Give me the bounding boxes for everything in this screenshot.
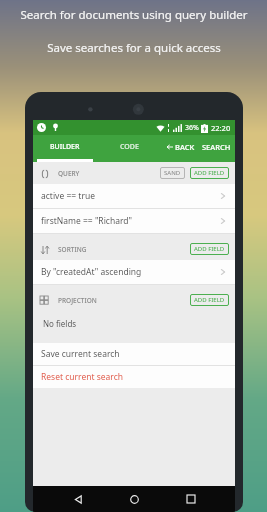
button[interactable]: CODE: [97, 135, 161, 159]
button[interactable]: ADD FIELD: [190, 167, 229, 179]
button[interactable]: By "createdAt" ascending: [33, 260, 235, 284]
button[interactable]: Back: [66, 487, 90, 511]
button[interactable]: Home: [122, 487, 146, 511]
button[interactable]: Recents: [179, 487, 203, 511]
button[interactable]: active == true: [33, 184, 235, 208]
staticText: BACK: [175, 142, 195, 152]
staticText: Save current search: [41, 348, 120, 360]
staticText: SORTING: [58, 245, 87, 254]
staticText: ADD FIELD: [194, 245, 225, 253]
other: Sorting: [40, 245, 50, 255]
staticText: By "createdAt" ascending: [41, 266, 142, 278]
staticText: SEARCH: [202, 142, 231, 152]
staticText: firstName == "Richard": [41, 215, 132, 227]
staticText: BUILDER: [50, 142, 80, 152]
staticText: No fields: [43, 318, 77, 329]
staticText: Reset current search: [41, 371, 124, 383]
button[interactable]: Save current search: [33, 343, 235, 365]
staticText: 36%: [185, 123, 199, 133]
staticText: CODE: [120, 142, 139, 152]
button[interactable]: SEARCH: [202, 142, 231, 152]
staticText: Save searches for a quick access: [47, 40, 221, 56]
other: Query: [40, 169, 50, 179]
button[interactable]: Reset current search: [33, 366, 235, 388]
staticText: ADD FIELD: [194, 296, 225, 304]
staticText: active == true: [41, 190, 95, 202]
staticText: 22:20: [211, 123, 231, 133]
staticText: Search for documents using query builder: [20, 7, 248, 23]
button[interactable]: ADD FIELD: [190, 294, 229, 306]
staticText: QUERY: [58, 169, 80, 178]
button[interactable]: BUILDER: [33, 135, 97, 159]
staticText: SAND: [164, 169, 181, 177]
button[interactable]: firstName == "Richard": [33, 209, 235, 233]
button[interactable]: SAND: [160, 167, 185, 179]
staticText: ADD FIELD: [194, 169, 225, 177]
staticText: PROJECTION: [58, 296, 97, 305]
button[interactable]: BACK: [165, 142, 197, 152]
other: Projection: [40, 296, 50, 306]
button[interactable]: ADD FIELD: [190, 243, 229, 255]
